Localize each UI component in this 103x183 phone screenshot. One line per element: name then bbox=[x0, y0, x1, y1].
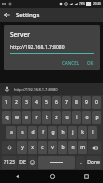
staticText: y bbox=[21, 144, 24, 151]
staticText: 4 bbox=[35, 99, 38, 106]
staticText: Done bbox=[87, 159, 100, 166]
button[interactable]: r bbox=[32, 111, 41, 124]
button[interactable]: CANCEL bbox=[60, 59, 82, 67]
button[interactable]: 6 bbox=[52, 96, 61, 109]
staticText: http://192.168.1.7:8080 bbox=[14, 87, 58, 92]
staticText: v bbox=[51, 144, 54, 151]
staticText: k bbox=[81, 129, 84, 136]
button[interactable]: j bbox=[68, 126, 77, 139]
staticText: c bbox=[41, 144, 44, 151]
button[interactable]: 7 bbox=[62, 96, 71, 109]
staticText: g bbox=[51, 129, 55, 136]
staticText: u bbox=[65, 114, 69, 121]
button[interactable]: x bbox=[28, 141, 37, 154]
button[interactable]: 9 bbox=[82, 96, 91, 109]
staticText: 6 bbox=[55, 99, 58, 106]
staticText: DE bbox=[19, 159, 26, 166]
button[interactable]: i bbox=[72, 111, 81, 124]
staticText: e bbox=[25, 114, 28, 121]
button[interactable]: Voice input bbox=[0, 83, 14, 95]
button[interactable]: Back bbox=[0, 170, 35, 183]
staticText: t bbox=[46, 114, 48, 121]
staticText: j bbox=[72, 129, 74, 136]
staticText: 5 bbox=[45, 99, 48, 106]
staticText: f bbox=[42, 129, 44, 136]
button[interactable]: 4 bbox=[32, 96, 41, 109]
staticText: i bbox=[76, 114, 78, 121]
button[interactable]: 8 bbox=[72, 96, 81, 109]
button[interactable]: OK bbox=[85, 59, 96, 67]
button[interactable]: o bbox=[82, 111, 91, 124]
staticText: s bbox=[21, 129, 24, 136]
staticText: 8 bbox=[75, 99, 78, 106]
staticText: 3 bbox=[25, 99, 28, 106]
staticText: p bbox=[95, 114, 99, 121]
staticText: Server bbox=[10, 30, 30, 39]
button[interactable]: Recents bbox=[69, 170, 103, 183]
button[interactable]: n bbox=[68, 141, 77, 154]
staticText: x bbox=[31, 144, 34, 151]
button[interactable]: 5 bbox=[42, 96, 51, 109]
button[interactable]: Back bbox=[0, 8, 14, 22]
staticText: n bbox=[71, 144, 75, 151]
staticText: 2 bbox=[15, 99, 18, 106]
staticText: d bbox=[31, 129, 35, 136]
staticText: z bbox=[55, 114, 58, 121]
button[interactable]: 3 bbox=[22, 96, 31, 109]
staticText: 7 bbox=[65, 99, 68, 106]
button[interactable]: Space bbox=[38, 156, 75, 169]
button[interactable]: k bbox=[78, 126, 87, 139]
button[interactable]: Home bbox=[35, 170, 69, 183]
staticText: 9 bbox=[85, 99, 88, 106]
button[interactable]: 0 bbox=[92, 96, 101, 109]
staticText: a bbox=[10, 129, 13, 136]
staticText: b bbox=[61, 144, 65, 151]
button[interactable]: h bbox=[58, 126, 67, 139]
button[interactable]: g bbox=[48, 126, 57, 139]
button[interactable]: e bbox=[22, 111, 31, 124]
button[interactable]: a bbox=[6, 126, 16, 139]
staticText: 78% bbox=[79, 2, 85, 6]
button[interactable]: Emoji bbox=[28, 156, 37, 169]
button[interactable]: m bbox=[78, 141, 87, 154]
button[interactable]: l bbox=[88, 126, 97, 139]
staticText: OK bbox=[87, 60, 94, 66]
button[interactable]: c bbox=[38, 141, 47, 154]
staticText: l bbox=[92, 129, 94, 136]
staticText: Settings bbox=[16, 11, 40, 19]
button[interactable]: Shift bbox=[2, 141, 16, 154]
staticText: q bbox=[5, 114, 9, 121]
staticText: o bbox=[85, 114, 89, 121]
button[interactable]: ?123 bbox=[2, 156, 17, 169]
staticText: 20:35 bbox=[93, 2, 102, 6]
staticText: ?123 bbox=[4, 159, 15, 166]
staticText: m bbox=[80, 144, 85, 151]
staticText: http://192.168.1.7:8080 bbox=[10, 44, 65, 51]
button[interactable]: b bbox=[58, 141, 67, 154]
button[interactable]: . bbox=[76, 156, 85, 169]
button[interactable]: s bbox=[17, 126, 27, 139]
button[interactable]: p bbox=[92, 111, 101, 124]
staticText: 1 bbox=[5, 99, 8, 106]
button[interactable]: q bbox=[2, 111, 11, 124]
button[interactable]: z bbox=[52, 111, 61, 124]
button[interactable]: y bbox=[17, 141, 27, 154]
button[interactable]: u bbox=[62, 111, 71, 124]
button[interactable]: DE bbox=[18, 156, 27, 169]
staticText: w bbox=[15, 114, 19, 121]
button[interactable]: v bbox=[48, 141, 57, 154]
staticText: . bbox=[80, 159, 82, 166]
staticText: h bbox=[61, 129, 65, 136]
staticText: 0 bbox=[95, 99, 98, 106]
button[interactable]: Backspace bbox=[88, 141, 101, 154]
button[interactable]: w bbox=[12, 111, 21, 124]
staticText: r bbox=[35, 114, 38, 121]
button[interactable]: t bbox=[42, 111, 51, 124]
button[interactable]: 1 bbox=[2, 96, 11, 109]
button[interactable]: 2 bbox=[12, 96, 21, 109]
staticText: CANCEL bbox=[62, 60, 80, 66]
button[interactable]: d bbox=[28, 126, 37, 139]
button[interactable]: f bbox=[38, 126, 47, 139]
button[interactable]: Done bbox=[86, 156, 101, 169]
